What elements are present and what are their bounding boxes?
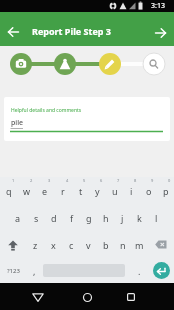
staticText: o [146,185,152,197]
button[interactable]: . [131,258,148,283]
staticText: d [51,212,57,224]
button[interactable]: u [106,177,123,204]
staticText: j [121,212,124,224]
button[interactable]: ?123 [0,258,26,283]
staticText: pile [11,118,24,128]
button[interactable]: y [89,177,106,204]
button[interactable]: l [148,204,165,231]
staticText: t [79,185,83,197]
staticText: m [135,239,144,251]
button[interactable]: t [72,177,89,204]
button[interactable] [28,287,48,307]
button[interactable]: h [97,204,114,231]
staticText: 2 [30,178,33,183]
staticText: a [15,212,21,224]
staticText: 3 [48,178,51,183]
button[interactable]: a [9,204,27,231]
button[interactable]: g [80,204,97,231]
button[interactable] [121,287,141,307]
button[interactable]: b [97,231,114,258]
staticText: x [51,239,56,251]
button[interactable]: j [114,204,131,231]
staticText: u [112,185,118,197]
button[interactable] [4,23,22,41]
button[interactable]: w [18,177,36,204]
button[interactable]: n [114,231,131,258]
staticText: 7 [117,178,120,183]
button[interactable]: e [36,177,54,204]
button[interactable]: r [54,177,72,204]
staticText: 1 [12,178,15,183]
staticText: z [33,239,38,251]
button[interactable]: v [80,231,97,258]
staticText: n [120,239,126,251]
button[interactable] [148,231,174,258]
staticText: f [70,212,74,224]
button[interactable]: f [63,204,80,231]
staticText: e [42,185,48,197]
staticText: s [34,212,39,224]
button[interactable]: d [45,204,63,231]
button[interactable]: Helpful details and comments [4,97,170,141]
staticText: h [103,212,109,224]
staticText: , [33,265,36,277]
button[interactable]: c [62,231,80,258]
staticText: g [86,212,92,224]
button[interactable] [77,287,97,307]
staticText: y [95,185,100,197]
staticText: k [137,212,142,224]
staticText: 0 [168,178,171,183]
staticText: Helpful details and comments [11,107,82,114]
button[interactable] [43,46,86,86]
staticText: ?123 [7,267,20,275]
staticText: Report Pile Step 3 [32,25,111,37]
staticText: p [163,185,169,197]
staticText: c [69,239,74,251]
staticText: 9 [151,178,154,183]
button[interactable] [148,258,174,283]
staticText: 8 [134,178,137,183]
button[interactable] [0,231,26,258]
button[interactable]: p [157,177,174,204]
staticText: v [86,239,91,251]
staticText: . [138,265,141,277]
staticText: r [61,185,65,197]
staticText: q [6,185,12,197]
button[interactable]: s [27,204,45,231]
button[interactable] [151,24,169,42]
button[interactable]: i [123,177,140,204]
button[interactable] [130,46,174,86]
button[interactable]: q [0,177,18,204]
button[interactable]: m [131,231,148,258]
staticText: l [155,212,158,224]
button[interactable]: , [26,258,43,283]
button[interactable] [86,46,130,86]
staticText: 5 [83,178,86,183]
staticText: 3:13 [151,1,165,11]
staticText: 6 [100,178,103,183]
staticText: 4 [66,178,69,183]
button[interactable]: k [131,204,148,231]
staticText: w [23,185,31,197]
staticText: i [130,185,133,197]
button[interactable] [0,46,43,86]
staticText: b [103,239,109,251]
button[interactable]: z [26,231,44,258]
button[interactable]: x [44,231,62,258]
button[interactable]: o [140,177,157,204]
